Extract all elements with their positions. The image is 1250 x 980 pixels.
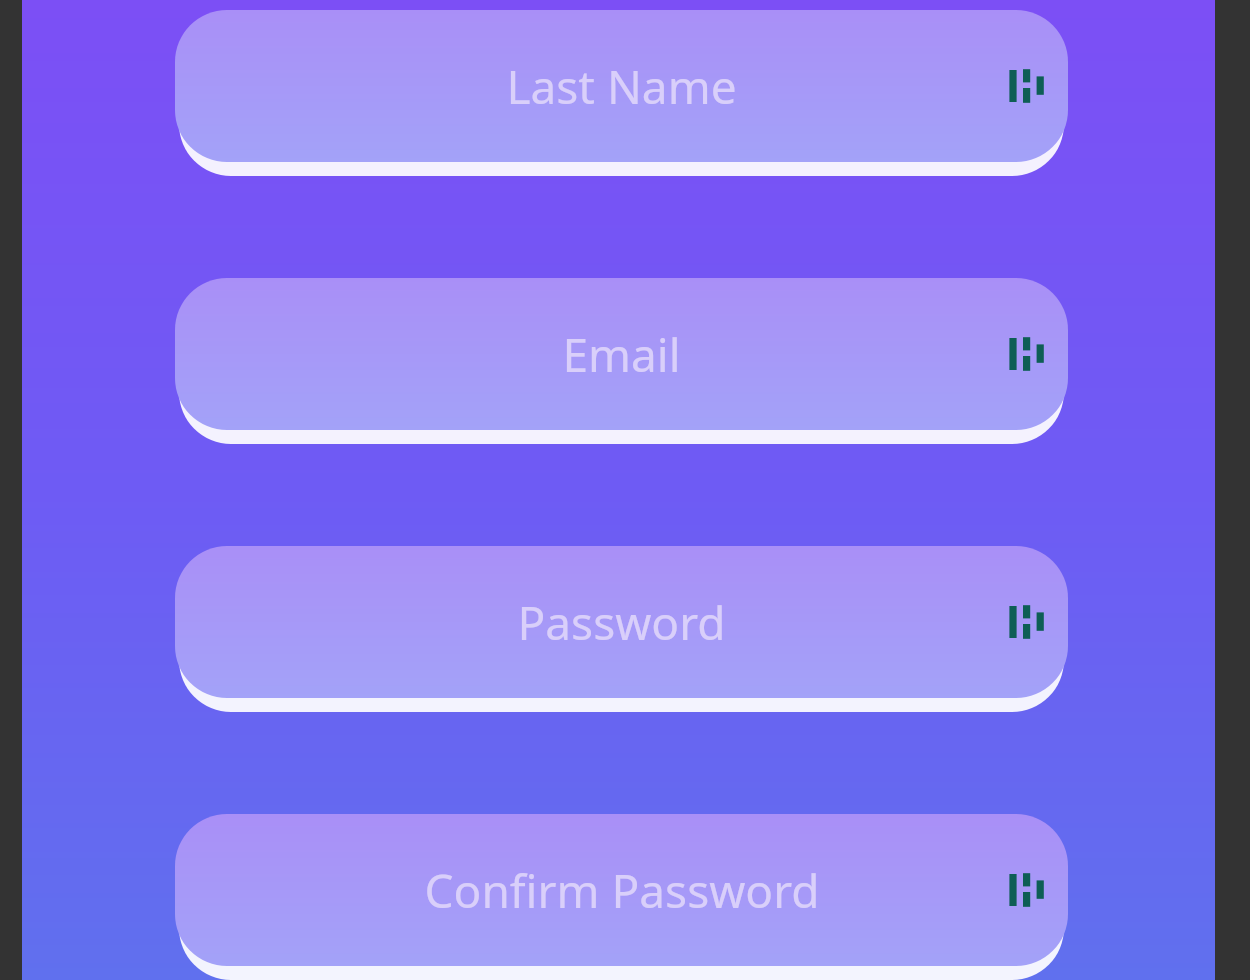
button[interactable]: Last Name <box>175 10 1068 162</box>
button[interactable]: Show input options <box>1000 863 1054 917</box>
button[interactable]: Confirm Password <box>175 814 1068 966</box>
button[interactable]: Password <box>175 546 1068 698</box>
staticText: Confirm Password <box>424 859 820 922</box>
button[interactable]: Show input options <box>1000 59 1054 113</box>
staticText: Email <box>562 323 681 386</box>
staticText: Last Name <box>506 55 737 118</box>
button[interactable]: Show input options <box>1000 327 1054 381</box>
staticText: Password <box>517 591 726 654</box>
button[interactable]: Show input options <box>1000 595 1054 649</box>
button[interactable]: Email <box>175 278 1068 430</box>
